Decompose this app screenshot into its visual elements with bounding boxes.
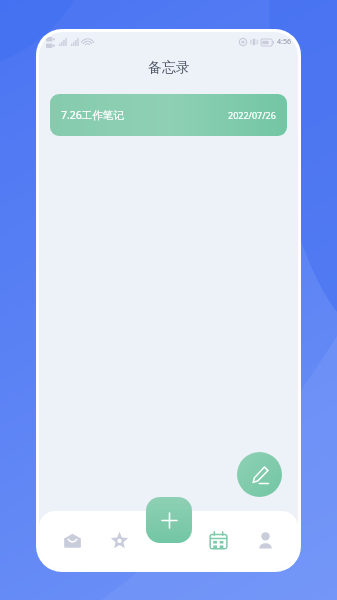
staticText: 2022/07/26 <box>228 109 276 121</box>
button[interactable]: 7.26工作笔记 <box>50 94 287 136</box>
button[interactable]: Add <box>146 497 192 543</box>
button[interactable]: Profile <box>245 518 285 562</box>
staticText: 4:56 <box>277 37 291 47</box>
button[interactable]: New note <box>237 452 282 497</box>
staticText: 7.26工作笔记 <box>61 108 124 122</box>
staticText: 备忘录 <box>148 59 190 77</box>
button[interactable]: Calendar <box>198 518 238 562</box>
button[interactable]: Favorites <box>99 518 139 562</box>
button[interactable]: Mail <box>52 518 92 562</box>
